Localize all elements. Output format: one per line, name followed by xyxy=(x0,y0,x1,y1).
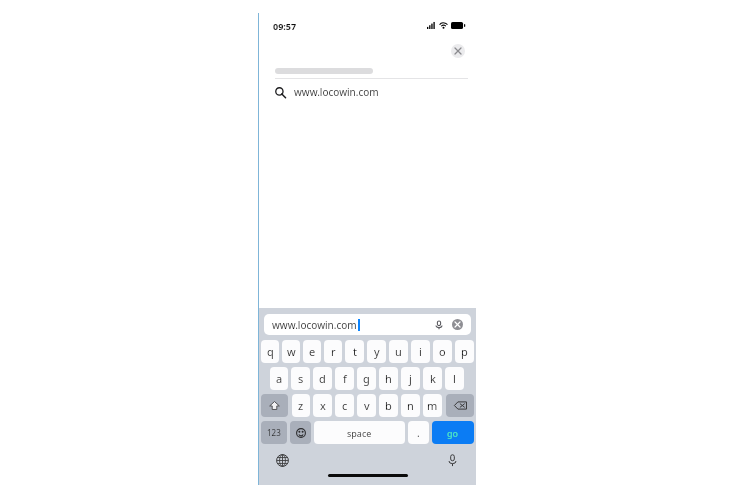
staticText: q xyxy=(267,344,274,359)
staticText: x xyxy=(320,398,326,413)
staticText: j xyxy=(409,371,412,386)
button[interactable]: p xyxy=(455,340,474,363)
staticText: y xyxy=(374,344,380,359)
button[interactable]: a xyxy=(270,367,288,390)
button[interactable]: q xyxy=(261,340,279,363)
button[interactable]: w xyxy=(282,340,300,363)
staticText: z xyxy=(298,398,304,413)
button[interactable]: . xyxy=(408,421,429,444)
staticText: u xyxy=(395,344,402,359)
button[interactable]: d xyxy=(313,367,332,390)
button[interactable]: b xyxy=(379,394,398,417)
staticText: t xyxy=(353,344,357,359)
staticText: i xyxy=(419,344,422,359)
staticText: v xyxy=(364,398,370,413)
button[interactable]: k xyxy=(423,367,442,390)
staticText: 123 xyxy=(267,427,281,438)
button[interactable]: o xyxy=(433,340,452,363)
staticText: w xyxy=(287,344,296,359)
button[interactable]: g xyxy=(357,367,376,390)
staticText: k xyxy=(430,371,436,386)
staticText: p xyxy=(461,344,468,359)
staticText: a xyxy=(276,371,283,386)
button[interactable]: space xyxy=(314,421,405,444)
button[interactable]: j xyxy=(401,367,420,390)
button[interactable]: Emoji xyxy=(290,421,311,444)
button[interactable]: s xyxy=(291,367,310,390)
button[interactable]: u xyxy=(389,340,408,363)
staticText: n xyxy=(407,398,414,413)
button[interactable]: y xyxy=(367,340,386,363)
staticText: h xyxy=(385,371,392,386)
button[interactable]: l xyxy=(445,367,464,390)
button[interactable]: Backspace xyxy=(446,394,474,417)
staticText: o xyxy=(439,344,446,359)
button[interactable]: f xyxy=(335,367,354,390)
button[interactable]: Dictate xyxy=(446,454,459,467)
button[interactable]: e xyxy=(303,340,321,363)
staticText: s xyxy=(298,371,304,386)
button[interactable]: i xyxy=(411,340,430,363)
staticText: c xyxy=(342,398,348,413)
staticText: r xyxy=(331,344,336,359)
staticText: 09:57 xyxy=(273,20,297,32)
staticText: . xyxy=(417,426,420,440)
staticText: e xyxy=(309,344,316,359)
button[interactable]: x xyxy=(313,394,332,417)
button[interactable]: www.locowin.com xyxy=(264,314,471,335)
button[interactable]: t xyxy=(345,340,364,363)
staticText: m xyxy=(427,398,438,413)
staticText: d xyxy=(319,371,326,386)
button[interactable]: n xyxy=(401,394,420,417)
staticText: b xyxy=(385,398,392,413)
button[interactable]: m xyxy=(423,394,442,417)
button[interactable]: 123 xyxy=(261,421,287,444)
button[interactable]: Clear xyxy=(452,319,463,330)
button[interactable]: r xyxy=(324,340,342,363)
button[interactable]: Shift xyxy=(261,394,288,417)
button[interactable]: c xyxy=(335,394,354,417)
staticText: g xyxy=(363,371,370,386)
button[interactable]: go xyxy=(432,421,474,444)
staticText: f xyxy=(343,371,347,386)
staticText: space xyxy=(347,427,372,439)
button[interactable]: h xyxy=(379,367,398,390)
staticText: go xyxy=(447,427,459,439)
button[interactable]: Close xyxy=(451,44,465,58)
button[interactable]: Voice input xyxy=(434,320,444,330)
button[interactable]: Switch keyboard xyxy=(276,454,289,467)
button[interactable]: www.locowin.com xyxy=(259,79,476,105)
staticText: www.locowin.com xyxy=(272,318,357,332)
staticText: www.locowin.com xyxy=(294,85,379,99)
button[interactable]: z xyxy=(292,394,310,417)
button[interactable]: v xyxy=(357,394,376,417)
staticText: l xyxy=(453,371,456,386)
